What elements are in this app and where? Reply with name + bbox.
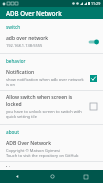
staticText: Allow switch when screen is locked [6, 94, 85, 108]
staticText: Copyright © Matson Gyimesi Touch to visi… [6, 148, 79, 158]
staticText: 192.168.1.138:5555 [6, 43, 43, 48]
button[interactable]: Back [0, 170, 35, 183]
button[interactable]: Recents [69, 170, 103, 183]
staticText: 11:29 [91, 1, 101, 6]
button[interactable]: Allow switch when screen is locked [0, 91, 103, 122]
staticText: behavior [6, 58, 26, 64]
staticText: License [6, 165, 24, 167]
staticText: ADB Over Network [6, 140, 52, 147]
staticText: switch [6, 24, 21, 30]
staticText: show notification when adb over network … [6, 77, 85, 87]
button[interactable]: Home [35, 170, 69, 183]
staticText: about [6, 129, 19, 135]
staticText: adb over network [6, 35, 49, 42]
button[interactable]: License [0, 162, 103, 170]
staticText: Notification [6, 69, 35, 76]
staticText: you have to unlock screen to switch with… [6, 109, 85, 119]
staticText: ADB Over Network [6, 9, 62, 17]
button[interactable]: adb over network [0, 32, 103, 51]
button[interactable]: ADB Over Network [0, 137, 103, 161]
button[interactable]: Notification [0, 66, 103, 90]
